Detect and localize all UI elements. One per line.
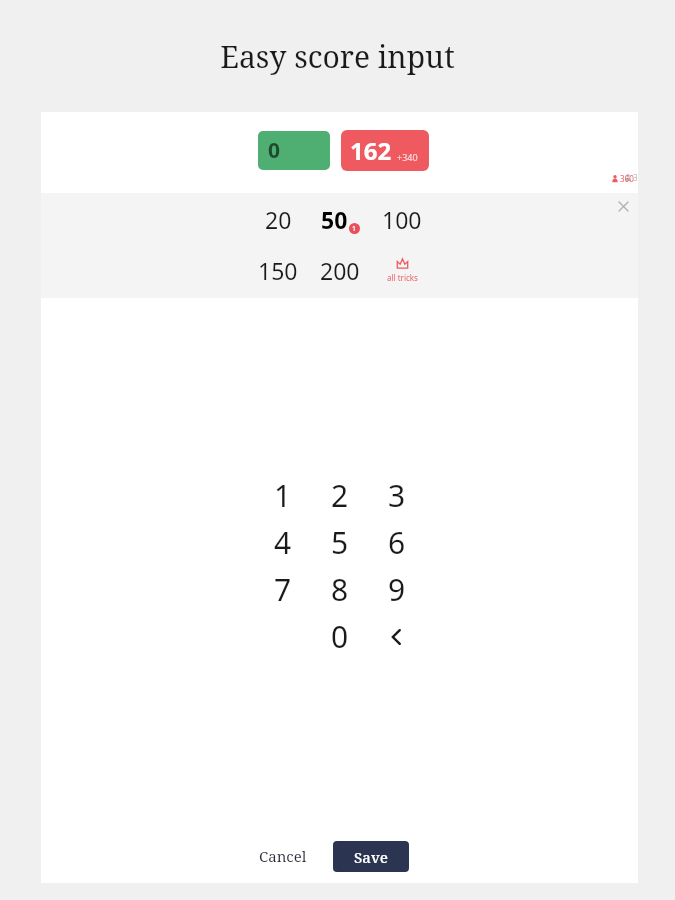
button[interactable]: 7	[255, 566, 311, 613]
staticText: 50	[321, 204, 348, 235]
button[interactable]: 162	[341, 130, 429, 171]
staticText: Save	[354, 847, 388, 867]
staticText: 0	[268, 136, 281, 165]
staticText: 162	[350, 134, 392, 167]
button[interactable]: 2	[311, 472, 368, 519]
button[interactable]: 150	[247, 248, 309, 292]
button[interactable]: Save	[333, 841, 409, 872]
staticText: 360	[620, 173, 634, 184]
staticText: 150	[258, 255, 298, 286]
button[interactable]: 20	[247, 197, 309, 241]
staticText: 8	[331, 569, 349, 610]
staticText: Cancel	[259, 846, 307, 866]
staticText: 2	[331, 475, 349, 516]
button[interactable]: 50	[309, 197, 371, 241]
staticText: 1	[274, 475, 292, 516]
staticText: 3	[633, 172, 638, 183]
staticText: 6	[388, 522, 406, 563]
staticText: 3	[388, 475, 406, 516]
staticText: 1	[352, 224, 357, 234]
button[interactable]: 9	[368, 566, 425, 613]
button[interactable]: 3	[368, 472, 425, 519]
button[interactable]: 6	[368, 519, 425, 566]
staticText: 100	[382, 204, 422, 235]
staticText: 200	[320, 255, 360, 286]
staticText: +340	[397, 151, 418, 163]
staticText: Easy score input	[220, 36, 455, 77]
button[interactable]: 5	[311, 519, 368, 566]
button[interactable]: 4	[255, 519, 311, 566]
button[interactable]: 1	[255, 472, 311, 519]
staticText: 20	[265, 204, 292, 235]
staticText: all tricks	[387, 272, 418, 283]
staticText: 7	[274, 569, 292, 610]
button[interactable]: Backspace	[368, 613, 425, 660]
staticText: 4	[274, 522, 292, 563]
button[interactable]: 0	[258, 131, 330, 170]
button[interactable]: 200	[309, 248, 371, 292]
button[interactable]: Close	[612, 195, 634, 217]
button[interactable]: 0	[311, 613, 368, 660]
button[interactable]: 100	[371, 197, 433, 241]
staticText: 0	[331, 616, 349, 657]
staticText: 9	[388, 569, 406, 610]
button[interactable]: Cancel	[240, 836, 326, 876]
button[interactable]: all tricks	[371, 248, 433, 292]
staticText: 5	[331, 522, 349, 563]
button[interactable]: 8	[311, 566, 368, 613]
